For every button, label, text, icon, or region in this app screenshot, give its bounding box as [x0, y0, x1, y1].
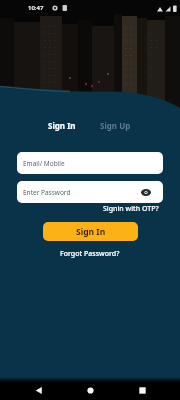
- button[interactable]: [133, 381, 151, 399]
- button[interactable]: Enter Password: [17, 181, 163, 203]
- staticText: Sign In: [48, 120, 76, 131]
- staticText: Sign Up: [100, 120, 131, 131]
- button[interactable]: [81, 381, 99, 399]
- button[interactable]: Sign In: [43, 222, 138, 241]
- staticText: Sign In: [76, 226, 106, 238]
- staticText: 10:47: [28, 4, 44, 12]
- button[interactable]: Forgot Password?: [0, 249, 180, 259]
- button[interactable]: Email/ Mobile: [17, 152, 163, 174]
- staticText: Signin with OTP?: [103, 204, 159, 214]
- button[interactable]: Sign Up: [94, 116, 137, 135]
- button[interactable]: Sign In: [42, 116, 82, 135]
- button[interactable]: [29, 381, 47, 399]
- staticText: Email/ Mobile: [23, 159, 65, 168]
- button[interactable]: Signin with OTP?: [103, 204, 159, 214]
- staticText: Enter Password: [23, 188, 71, 197]
- staticText: Forgot Password?: [60, 249, 120, 259]
